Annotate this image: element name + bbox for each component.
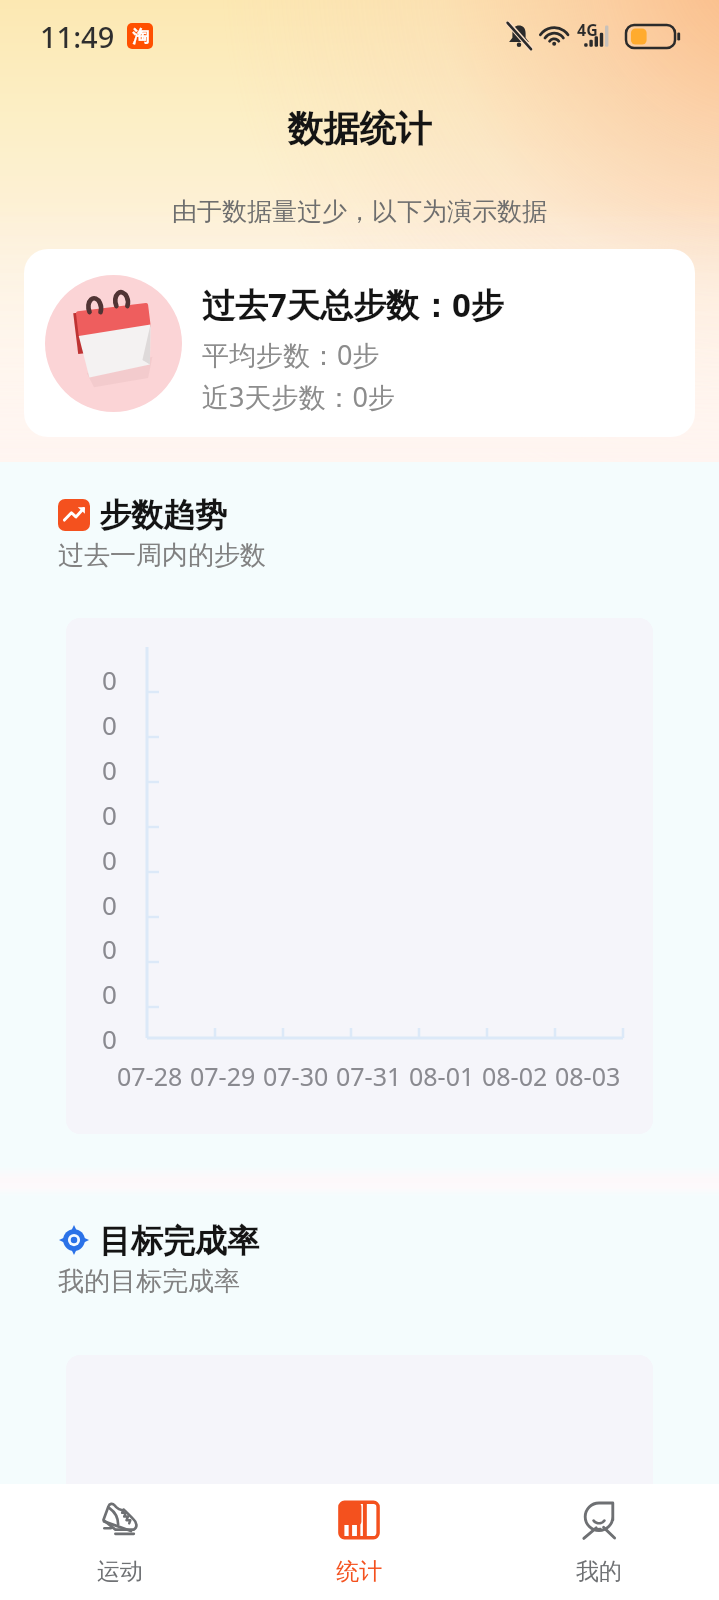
staticText: 0	[102, 752, 117, 787]
staticText: 07-29	[190, 1059, 256, 1093]
staticText: 统计	[336, 1557, 382, 1586]
staticText: 07-31	[336, 1059, 402, 1093]
staticText: 我的目标完成率	[58, 1265, 240, 1298]
staticText: 数据统计	[0, 106, 719, 151]
button[interactable]: 统计	[239, 1484, 479, 1600]
staticText: 步数趋势	[99, 495, 227, 535]
staticText: 08-01	[409, 1059, 475, 1093]
staticText: 平均步数：0步	[202, 336, 380, 373]
staticText: 淘	[132, 26, 149, 47]
button[interactable]: 步数趋势图表	[66, 618, 653, 1134]
staticText: 07-30	[263, 1059, 329, 1093]
staticText: 0	[102, 976, 117, 1011]
staticText: 4G	[577, 19, 598, 41]
staticText: 过去7天总步数：0步	[202, 282, 504, 327]
staticText: 过去一周内的步数	[58, 539, 266, 572]
staticText: 11:49	[40, 17, 115, 56]
staticText: 08-02	[482, 1059, 548, 1093]
staticText: 我的	[576, 1557, 622, 1586]
staticText: 08-03	[555, 1059, 621, 1093]
button[interactable]: 过去7天总步数：0步	[24, 249, 695, 437]
staticText: 0	[102, 797, 117, 832]
staticText: 0	[102, 887, 117, 922]
button[interactable]: 我的	[479, 1484, 719, 1600]
staticText: 07-28	[117, 1059, 183, 1093]
staticText: 0	[102, 1021, 117, 1056]
staticText: 近3天步数：0步	[202, 378, 395, 415]
staticText: 0	[102, 931, 117, 966]
button[interactable]: 运动	[0, 1484, 239, 1600]
staticText: 由于数据量过少，以下为演示数据	[0, 196, 719, 227]
staticText: 0	[102, 842, 117, 877]
staticText: 0	[102, 707, 117, 742]
staticText: 运动	[97, 1557, 143, 1586]
staticText: 目标完成率	[99, 1221, 259, 1261]
staticText: 0	[102, 662, 117, 697]
